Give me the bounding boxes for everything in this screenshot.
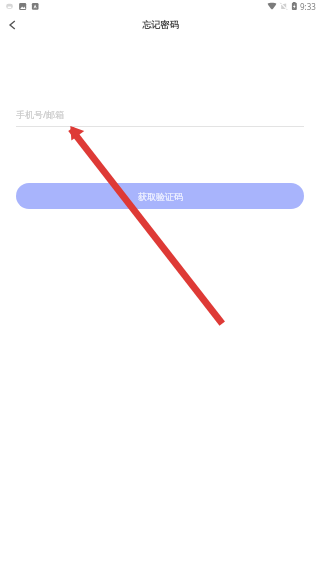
staticText: 9:33 bbox=[300, 1, 316, 12]
button[interactable]: 获取验证码 bbox=[16, 183, 304, 209]
button[interactable]: 手机号/邮箱 bbox=[16, 103, 304, 125]
staticText: 手机号/邮箱 bbox=[16, 108, 65, 120]
staticText: 获取验证码 bbox=[138, 191, 183, 202]
staticText: 忘记密码 bbox=[142, 19, 179, 31]
button[interactable]: Back bbox=[0, 13, 24, 37]
